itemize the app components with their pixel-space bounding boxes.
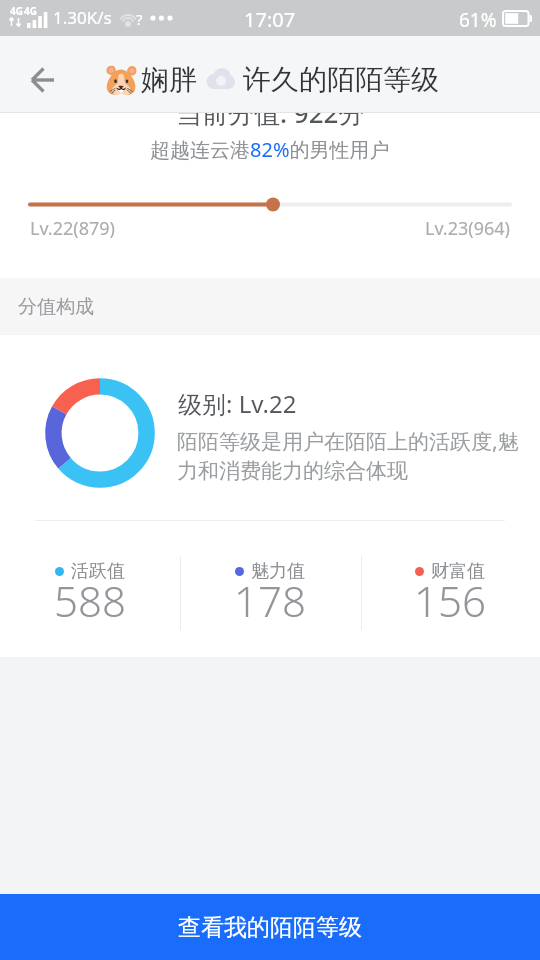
staticText: 178: [234, 572, 306, 629]
staticText: 财富值: [431, 560, 485, 583]
staticText: 陌陌等级是用户在陌陌上的活跃度,魅 力和消费能力的综合体现: [177, 427, 537, 484]
staticText: 当前分值: 922分: [176, 95, 365, 131]
staticText: 588: [54, 572, 126, 629]
staticText: 分值构成: [18, 295, 94, 319]
staticText: 156: [414, 572, 486, 629]
staticText: 查看我的陌陌等级: [178, 913, 362, 942]
staticText: 🐹: [102, 61, 141, 97]
staticText: ?: [136, 9, 143, 29]
staticText: 17:07: [244, 6, 296, 33]
staticText: 61%: [459, 7, 497, 33]
button[interactable]: [23, 58, 63, 98]
staticText: Lv.22(879): [30, 216, 115, 241]
staticText: 许久的陌陌等级: [243, 62, 439, 97]
staticText: 4G: [10, 4, 23, 18]
button[interactable]: 查看我的陌陌等级: [0, 894, 540, 960]
staticText: 级别: Lv.22: [178, 387, 297, 420]
staticText: 活跃值: [71, 560, 125, 583]
staticText: Lv.23(964): [425, 216, 510, 241]
staticText: 魅力值: [251, 560, 305, 583]
staticText: 超越连云港82%的男性用户: [150, 136, 390, 163]
staticText: 娴胖: [141, 62, 197, 97]
staticText: 4G: [24, 4, 37, 18]
staticText: 1.30K/s: [53, 6, 112, 29]
